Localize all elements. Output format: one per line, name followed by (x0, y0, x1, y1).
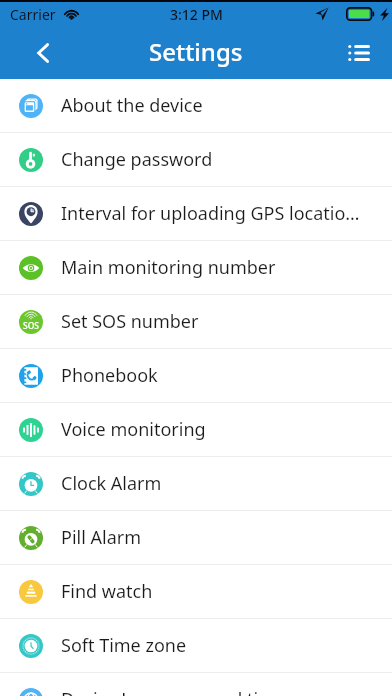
button[interactable]: Find watch (0, 565, 392, 619)
staticText: Soft Time zone (61, 633, 187, 658)
button[interactable]: Change password (0, 133, 392, 187)
staticText: Interval for uploading GPS locatio… (61, 201, 360, 226)
staticText: About the device (61, 93, 203, 118)
button[interactable]: Interval for uploading GPS locatio… (0, 187, 392, 241)
staticText: Clock Alarm (61, 471, 162, 496)
staticText: Change password (61, 147, 213, 172)
staticText: Set SOS number (61, 309, 199, 334)
staticText: Find watch (61, 579, 153, 604)
staticText: Device Language and timezone (61, 687, 326, 696)
staticText: Phonebook (61, 363, 158, 388)
button[interactable]: Main monitoring number (0, 241, 392, 295)
button[interactable]: Device Language and timezone (0, 673, 392, 696)
staticText: 3:12 PM (170, 5, 223, 24)
staticText: Main monitoring number (61, 255, 276, 280)
staticText: Carrier (10, 5, 56, 24)
staticText: Voice monitoring (61, 417, 206, 442)
staticText: Settings (149, 35, 243, 68)
button[interactable]: Back (0, 26, 62, 79)
button[interactable]: About the device (0, 79, 392, 133)
button[interactable]: Clock Alarm (0, 457, 392, 511)
button[interactable]: Pill Alarm (0, 511, 392, 565)
button[interactable]: Soft Time zone (0, 619, 392, 673)
staticText: Pill Alarm (61, 525, 142, 550)
staticText: SOS (23, 320, 40, 332)
button[interactable]: SOS (0, 295, 392, 349)
button[interactable]: Menu (334, 26, 392, 79)
button[interactable]: Phonebook (0, 349, 392, 403)
button[interactable]: Voice monitoring (0, 403, 392, 457)
